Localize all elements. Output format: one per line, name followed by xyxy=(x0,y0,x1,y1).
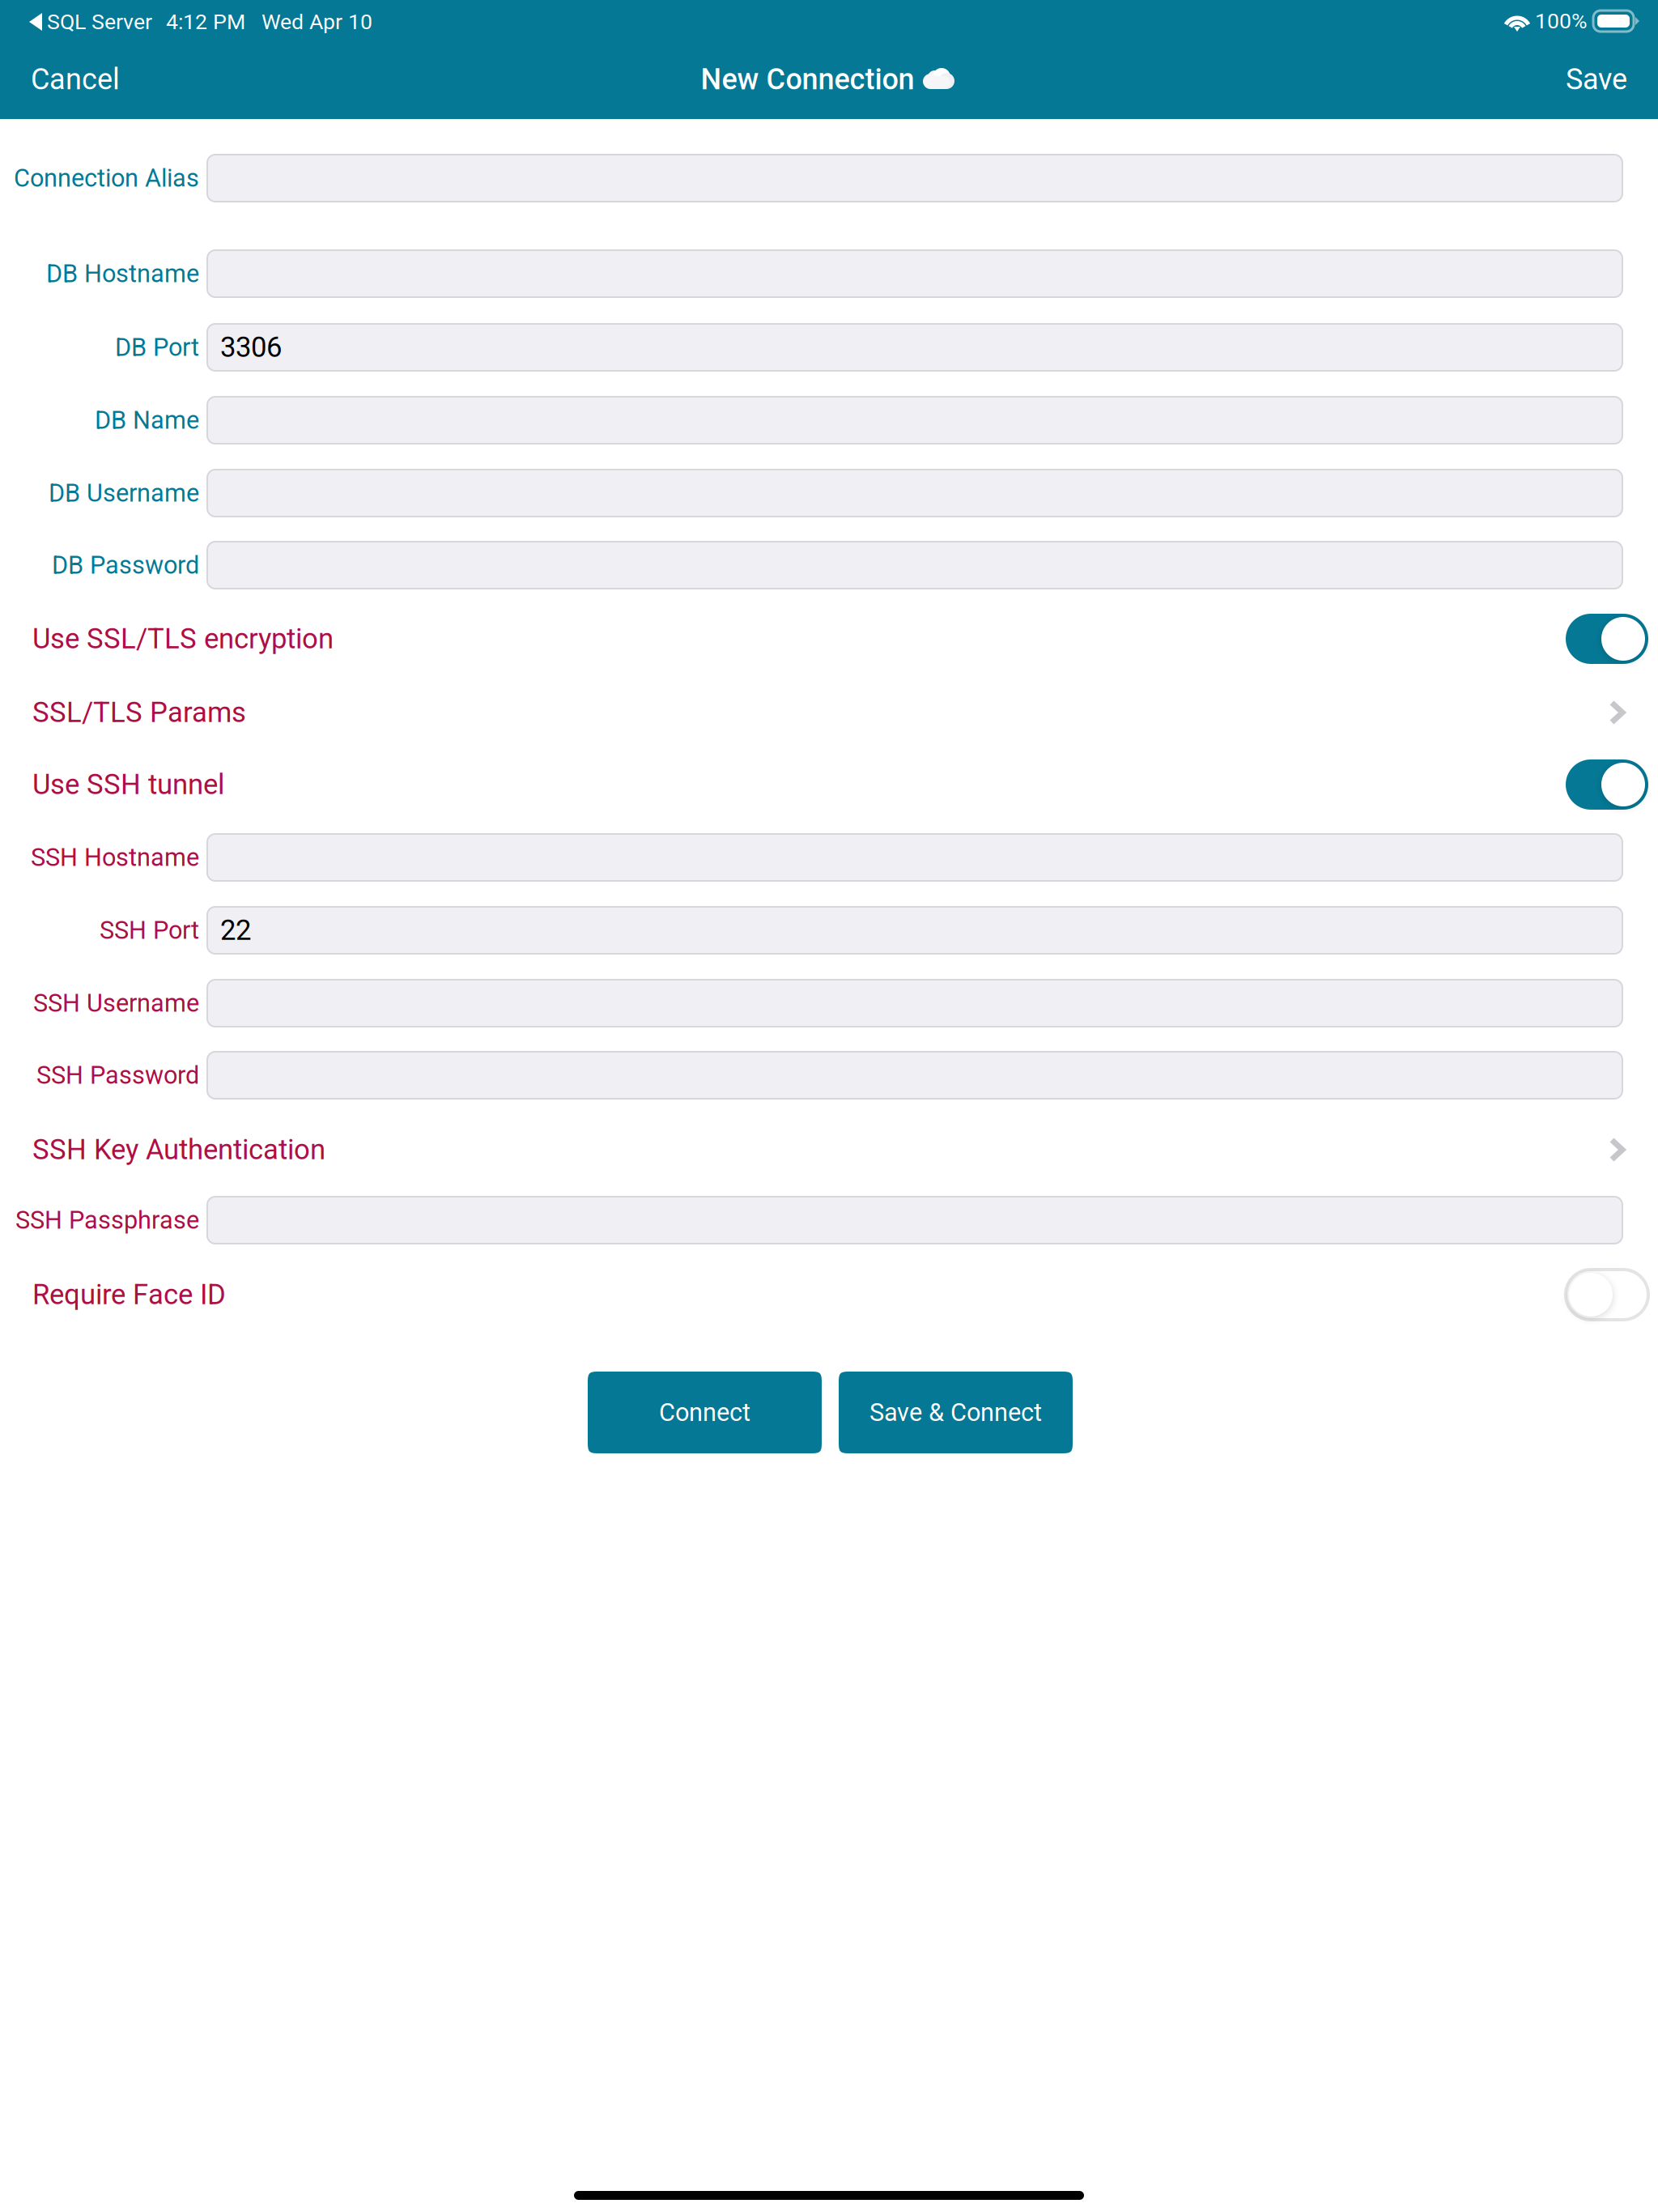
staticText: DB Hostname xyxy=(46,259,199,288)
button[interactable]: SSH Key Authentication xyxy=(0,1122,1658,1177)
staticText: Save xyxy=(1566,62,1627,96)
button[interactable]: SSH Passphrase xyxy=(207,1197,1622,1244)
staticText: Wed Apr 10 xyxy=(261,9,372,35)
button[interactable]: DB Name xyxy=(207,397,1622,444)
button[interactable]: DB Username xyxy=(207,470,1622,517)
button[interactable]: Connect xyxy=(588,1372,822,1453)
staticText: SSH Key Authentication xyxy=(32,1133,325,1166)
staticText: SSH Passphrase xyxy=(15,1206,199,1235)
button[interactable]: Cancel xyxy=(31,47,209,112)
button[interactable]: Require Face ID xyxy=(0,1267,1658,1322)
staticText: 3306 xyxy=(220,331,282,364)
staticText: DB Name xyxy=(95,406,199,435)
button[interactable]: SSL/TLS Params xyxy=(0,685,1658,740)
staticText: SSH Password xyxy=(36,1061,199,1090)
staticText: Connect xyxy=(659,1398,750,1427)
staticText: SSH Username xyxy=(33,989,199,1018)
button[interactable]: Save & Connect xyxy=(839,1372,1073,1453)
staticText: Use SSH tunnel xyxy=(32,768,224,801)
staticText: New Connection xyxy=(701,62,914,96)
button[interactable]: SSH Password xyxy=(207,1052,1622,1099)
button[interactable]: Use SSL/TLS encryption xyxy=(0,611,1658,666)
staticText: Require Face ID xyxy=(32,1278,226,1311)
staticText: 4:12 PM xyxy=(166,9,245,35)
button[interactable]: Save xyxy=(1449,47,1627,112)
staticText: DB Port xyxy=(115,333,199,362)
staticText: DB Password xyxy=(52,551,199,580)
button[interactable]: SSH Hostname xyxy=(207,834,1622,881)
button[interactable]: Use SSH tunnel xyxy=(0,757,1658,812)
button[interactable]: SSH Port xyxy=(207,907,1622,954)
staticText: Use SSL/TLS encryption xyxy=(32,622,334,655)
staticText: SQL Server xyxy=(47,9,152,35)
button[interactable]: DB Port xyxy=(207,324,1622,371)
staticText: SSL/TLS Params xyxy=(32,696,246,729)
staticText: DB Username xyxy=(49,479,199,508)
staticText: 100% xyxy=(1535,8,1588,34)
staticText: Connection Alias xyxy=(14,164,199,193)
button[interactable]: DB Hostname xyxy=(207,250,1622,297)
button[interactable]: DB Password xyxy=(207,542,1622,589)
staticText: 22 xyxy=(220,914,251,947)
button[interactable]: SSH Username xyxy=(207,980,1622,1027)
staticText: Cancel xyxy=(31,62,120,96)
staticText: Save & Connect xyxy=(869,1398,1042,1427)
staticText: SSH Hostname xyxy=(31,843,199,872)
button[interactable]: Connection Alias xyxy=(207,155,1622,202)
staticText: SSH Port xyxy=(100,916,199,945)
